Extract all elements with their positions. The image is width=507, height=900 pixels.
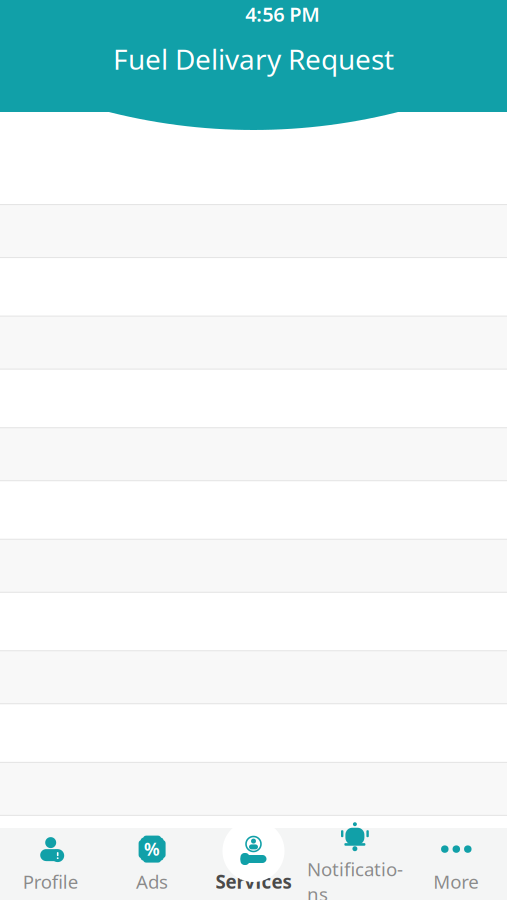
button[interactable]: Profile bbox=[0, 828, 101, 900]
staticText: Services bbox=[215, 869, 291, 894]
button[interactable]: % bbox=[101, 828, 203, 900]
button[interactable]: Notifications bbox=[304, 828, 406, 900]
button[interactable]: Services bbox=[222, 820, 284, 882]
staticText: Fuel Delivary Request bbox=[113, 40, 394, 78]
staticText: Ads bbox=[136, 869, 168, 894]
button[interactable]: Services bbox=[203, 828, 304, 900]
button[interactable]: More bbox=[406, 828, 507, 900]
staticText: Profile bbox=[23, 869, 79, 894]
staticText: Notifications bbox=[307, 857, 403, 900]
staticText: 4:56 PM bbox=[245, 1, 320, 27]
staticText: % bbox=[144, 838, 160, 861]
staticText: More bbox=[433, 869, 479, 894]
